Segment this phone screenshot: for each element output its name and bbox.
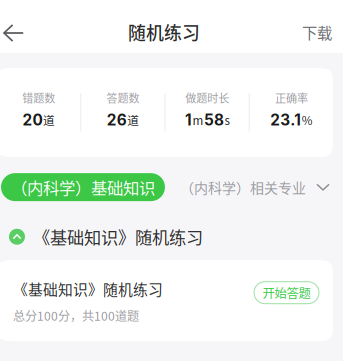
staticText: 23.1 — [270, 111, 301, 129]
button[interactable]: 下载 — [292, 11, 332, 53]
staticText: 20 — [22, 111, 42, 129]
staticText: 下载 — [302, 21, 332, 43]
staticText: m — [192, 112, 203, 128]
staticText: （内科学）相关专业 — [180, 177, 306, 197]
staticText: 26 — [107, 111, 127, 129]
staticText: 1 — [185, 111, 192, 129]
staticText: 58 — [204, 111, 224, 129]
button[interactable]: （内科学）基础知识 — [1, 173, 165, 201]
staticText: 答题数 — [106, 90, 139, 106]
staticText: 正确率 — [275, 90, 308, 106]
button[interactable]: （内科学）相关专业 — [180, 172, 330, 202]
button[interactable]: Back — [2, 14, 34, 50]
staticText: 随机练习 — [128, 19, 200, 45]
staticText: % — [302, 112, 313, 128]
staticText: s — [224, 112, 229, 128]
staticText: （内科学）基础知识 — [11, 175, 155, 199]
button[interactable]: 开始答题 — [254, 282, 319, 321]
staticText: 做题时长 — [185, 90, 229, 106]
staticText: 开始答题 — [262, 284, 310, 302]
staticText: 道 — [43, 112, 55, 128]
staticText: 道 — [127, 112, 139, 128]
staticText: 《基础知识》随机练习 — [13, 278, 163, 300]
staticText: 总分100分，共100道题 — [13, 307, 139, 324]
staticText: 错题数 — [22, 90, 55, 106]
staticText: 《基础知识》随机练习 — [33, 224, 203, 249]
